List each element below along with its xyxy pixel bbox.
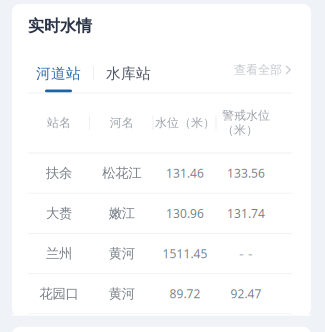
button[interactable]: 河道站 xyxy=(12,45,93,92)
staticText: 黄河 xyxy=(109,285,135,302)
staticText: 嫩江 xyxy=(109,205,135,221)
staticText: 站名 xyxy=(47,115,71,130)
staticText: 河道站 xyxy=(36,64,81,82)
button[interactable]: 兰州 xyxy=(12,234,311,274)
staticText: - - xyxy=(239,244,253,263)
staticText: 警戒水位 （米） xyxy=(222,108,270,137)
staticText: 河名 xyxy=(110,115,134,130)
staticText: 扶余 xyxy=(46,165,72,181)
staticText: 实时水情 xyxy=(28,16,92,36)
staticText: 131.46 xyxy=(166,165,204,181)
staticText: 水位（米） xyxy=(155,115,215,130)
staticText: 大赉 xyxy=(46,205,72,221)
button[interactable]: 大赉 xyxy=(12,194,311,234)
staticText: 133.56 xyxy=(227,165,265,181)
button[interactable]: 花园口 xyxy=(12,274,311,314)
staticText: 查看全部 xyxy=(234,62,282,77)
button[interactable]: 水库站 xyxy=(94,45,163,92)
staticText: 黄河 xyxy=(109,245,135,262)
staticText: 花园口 xyxy=(39,285,78,302)
staticText: 兰州 xyxy=(46,245,72,262)
staticText: 131.74 xyxy=(227,205,265,221)
staticText: 130.96 xyxy=(166,205,204,221)
staticText: 松花江 xyxy=(102,165,141,181)
staticText: 92.47 xyxy=(230,286,261,302)
staticText: 89.72 xyxy=(169,286,200,302)
button[interactable]: 扶余 xyxy=(12,153,311,194)
button[interactable]: 查看全部 xyxy=(234,45,311,87)
staticText: 1511.45 xyxy=(162,245,207,261)
staticText: 水库站 xyxy=(106,64,151,82)
